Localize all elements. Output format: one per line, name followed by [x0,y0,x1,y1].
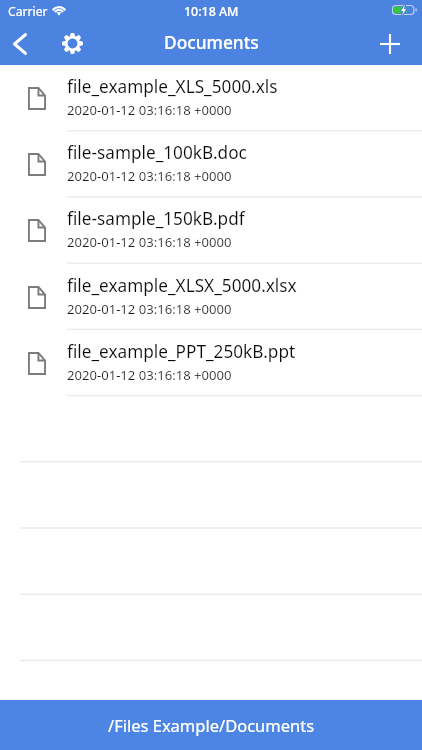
button[interactable]: file-sample_100kB.doc [0,131,422,197]
button[interactable]: file_example_XLS_5000.xls [0,65,422,131]
button[interactable]: file_example_XLSX_5000.xlsx [0,264,422,330]
staticText: file_example_PPT_250kB.ppt [67,340,296,363]
staticText: file_example_XLS_5000.xls [67,75,278,98]
staticText: file_example_XLSX_5000.xlsx [67,274,297,297]
staticText: file-sample_100kB.doc [67,141,247,164]
button[interactable]: file-sample_150kB.pdf [0,197,422,263]
staticText: 2020-01-12 03:16:18 +0000 [67,233,232,251]
button[interactable]: Settings [52,26,92,61]
staticText: 2020-01-12 03:16:18 +0000 [67,366,232,384]
button[interactable]: /Files Example/Documents [0,700,422,750]
staticText: file-sample_150kB.pdf [67,207,245,230]
staticText: 10:18 AM [184,3,239,20]
button[interactable]: Back [0,26,39,61]
staticText: 2020-01-12 03:16:18 +0000 [67,101,232,119]
staticText: /Files Example/Documents [108,714,315,736]
staticText: Documents [164,31,259,55]
button[interactable]: file_example_PPT_250kB.ppt [0,330,422,396]
button[interactable]: Add [368,26,412,61]
staticText: 2020-01-12 03:16:18 +0000 [67,300,232,318]
staticText: Carrier [8,3,48,20]
staticText: 2020-01-12 03:16:18 +0000 [67,167,232,185]
